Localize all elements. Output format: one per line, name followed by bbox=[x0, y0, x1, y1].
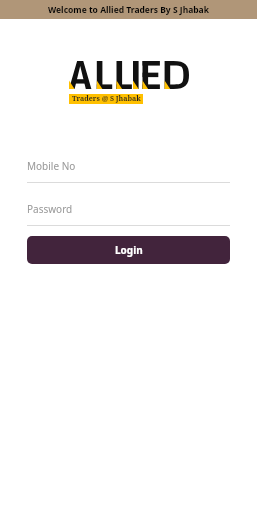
staticText: Traders @ S Jhabak bbox=[72, 94, 141, 104]
staticText: Mobile No bbox=[27, 159, 76, 173]
button[interactable]: Password bbox=[27, 200, 230, 226]
staticText: Login bbox=[115, 243, 143, 257]
button[interactable]: Login bbox=[27, 236, 230, 264]
staticText: Password bbox=[27, 202, 73, 216]
button[interactable]: Mobile No bbox=[27, 157, 230, 183]
staticText: Welcome to Allied Traders By S Jhabak bbox=[48, 4, 209, 16]
